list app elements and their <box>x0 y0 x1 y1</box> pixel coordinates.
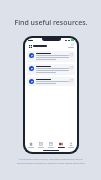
button[interactable]: Calendar <box>46 140 56 149</box>
button[interactable]: Resources <box>56 140 66 149</box>
button[interactable]: Menu <box>28 44 32 48</box>
button[interactable]: Docs <box>36 140 46 149</box>
button[interactable]: Profile <box>66 140 76 149</box>
button[interactable]: Open link <box>70 53 73 56</box>
button[interactable]: Open link <box>70 66 73 69</box>
staticText: Lorem ipsum dolor sit amet, consectetur … <box>15 158 87 164</box>
button[interactable]: Open link <box>27 64 75 75</box>
staticText: Find useful resources. <box>14 18 88 28</box>
button[interactable]: Home <box>26 140 36 149</box>
button[interactable]: Open link <box>27 51 75 62</box>
button[interactable]: Open link <box>70 79 73 82</box>
button[interactable]: Open link <box>27 77 75 86</box>
